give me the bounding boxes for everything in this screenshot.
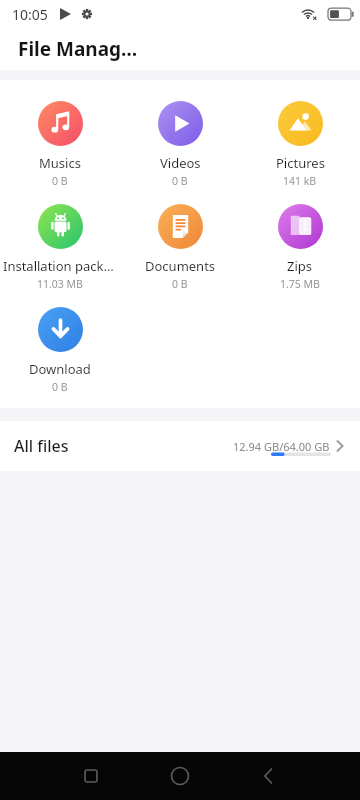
staticText: All files: [14, 435, 69, 457]
staticText: 0 B: [172, 174, 188, 188]
staticText: 141 kB: [283, 174, 317, 188]
staticText: 12.94 GB/64.00 GB: [233, 439, 330, 454]
staticText: Download: [29, 360, 91, 378]
staticText: File Manag…: [18, 36, 138, 62]
staticText: Zips: [287, 257, 313, 275]
staticText: Pictures: [276, 154, 325, 172]
staticText: 11.03 MB: [37, 277, 83, 291]
staticText: 0 B: [52, 380, 68, 394]
staticText: 1.75 MB: [280, 277, 320, 291]
staticText: Musics: [39, 154, 81, 172]
staticText: Videos: [160, 154, 201, 172]
staticText: Installation packages: [3, 257, 117, 275]
staticText: 10:05: [12, 5, 48, 24]
staticText: 0 B: [52, 174, 68, 188]
staticText: 0 B: [172, 277, 188, 291]
staticText: Documents: [145, 257, 216, 275]
